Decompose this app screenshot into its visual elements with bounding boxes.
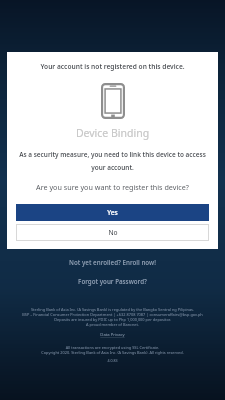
staticText: Deposits are insured by PDIC up to Php 1…	[6, 317, 219, 322]
button[interactable]: Yes	[16, 204, 209, 221]
staticText: Sterling Bank of Asia Inc. (A Savings Ba…	[6, 307, 219, 312]
staticText: Are you sure you want to register this d…	[17, 182, 208, 192]
button[interactable]: Not yet enrolled? Enroll now!	[0, 258, 225, 266]
staticText: Yes	[107, 208, 118, 217]
staticText: Your account is not registered on this d…	[15, 62, 210, 71]
staticText: 4.0.83	[6, 358, 219, 363]
staticText: A proud member of Bancnet.	[6, 322, 219, 327]
button[interactable]: No	[16, 224, 209, 241]
staticText: BSP – Financial Consumer Protection Depa…	[6, 312, 219, 317]
other: Device binding phone illustration	[101, 83, 125, 119]
staticText: Copyright 2020. Sterling Bank of Asia In…	[6, 350, 219, 355]
staticText: All transactions are encrypted using SSL…	[6, 345, 219, 350]
staticText: Data Privacy	[6, 332, 219, 338]
button[interactable]: Forgot your Password?	[0, 277, 225, 285]
staticText: Forgot your Password?	[78, 277, 147, 285]
button[interactable]: Data Privacy	[6, 332, 219, 338]
staticText: Not yet enrolled? Enroll now!	[69, 258, 156, 266]
staticText: Device Binding	[7, 126, 218, 140]
staticText: As a security measure, you need to link …	[19, 150, 206, 172]
staticText: No	[108, 228, 118, 237]
